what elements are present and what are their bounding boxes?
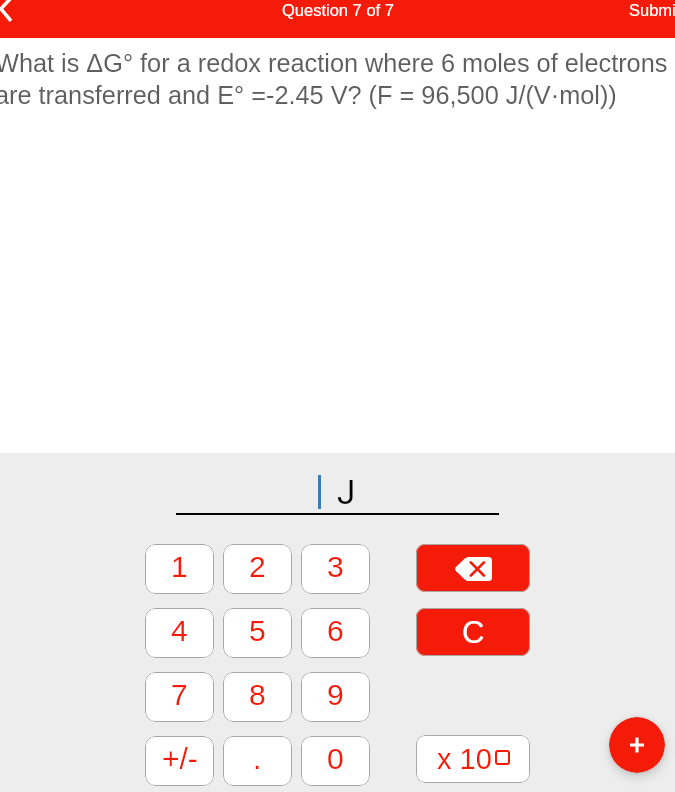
- button[interactable]: Submit: [615, 0, 675, 38]
- button[interactable]: Backspace: [416, 544, 530, 592]
- staticText: 8: [249, 678, 266, 712]
- staticText: 1: [171, 550, 188, 584]
- staticText: 4: [171, 614, 188, 648]
- staticText: 0: [327, 742, 344, 776]
- button[interactable]: 5: [223, 608, 292, 658]
- button[interactable]: 3: [301, 544, 370, 594]
- button[interactable]: 6: [301, 608, 370, 658]
- staticText: Submit: [629, 1, 675, 19]
- staticText: C: [462, 615, 485, 650]
- staticText: .: [253, 742, 262, 776]
- button[interactable]: 8: [223, 672, 292, 722]
- staticText: 7: [171, 678, 188, 712]
- button[interactable]: Back: [0, 0, 24, 38]
- button[interactable]: Add: [609, 717, 665, 773]
- button[interactable]: .: [223, 736, 292, 786]
- staticText: 9: [327, 678, 344, 712]
- button[interactable]: 2: [223, 544, 292, 594]
- staticText: 6: [327, 614, 344, 648]
- staticText: What is ΔG° for a redox reaction where 6…: [0, 49, 670, 110]
- button[interactable]: x 10: [416, 735, 530, 783]
- button[interactable]: 0: [301, 736, 370, 786]
- staticText: J: [337, 473, 356, 512]
- button[interactable]: +/-: [145, 736, 214, 786]
- button[interactable]: 9: [301, 672, 370, 722]
- staticText: x 10: [437, 743, 492, 775]
- button[interactable]: C: [416, 608, 530, 656]
- staticText: Question 7 of 7: [282, 1, 394, 19]
- staticText: 3: [327, 550, 344, 584]
- staticText: 2: [249, 550, 266, 584]
- button[interactable]: 7: [145, 672, 214, 722]
- staticText: +/-: [162, 742, 198, 776]
- staticText: 5: [249, 614, 266, 648]
- button[interactable]: 1: [145, 544, 214, 594]
- button[interactable]: 4: [145, 608, 214, 658]
